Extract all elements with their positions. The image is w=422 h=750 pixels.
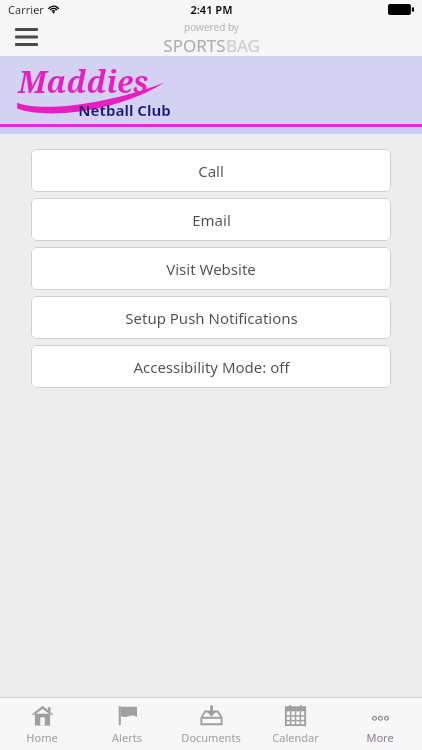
staticText: Home	[26, 730, 58, 745]
staticText: Carrier	[8, 2, 44, 17]
button[interactable]: Menu	[6, 18, 46, 56]
button[interactable]: Accessibility Mode: off	[31, 345, 391, 388]
button[interactable]: Calendar	[253, 698, 337, 750]
button[interactable]: Alerts	[85, 698, 169, 750]
staticText: Documents	[181, 730, 241, 745]
staticText: Call	[198, 161, 224, 181]
staticText: Setup Push Notifications	[125, 308, 298, 328]
staticText: Accessibility Mode: off	[133, 357, 290, 377]
staticText: Maddies	[18, 61, 149, 102]
button[interactable]: Visit Website	[31, 247, 391, 290]
staticText: 2:41 PM	[190, 2, 233, 17]
staticText: Netball Club	[78, 100, 171, 120]
staticText: SPORTS	[163, 34, 226, 57]
button[interactable]: Home	[0, 698, 84, 750]
staticText: Calendar	[272, 730, 319, 745]
staticText: Visit Website	[166, 259, 256, 279]
staticText: Alerts	[112, 730, 142, 745]
staticText: BAG	[226, 34, 260, 57]
button[interactable]: Call	[31, 149, 391, 192]
staticText: powered by	[184, 20, 239, 34]
button[interactable]: Email	[31, 198, 391, 241]
button[interactable]: Setup Push Notifications	[31, 296, 391, 339]
button[interactable]: More	[338, 698, 422, 750]
staticText: More	[366, 730, 394, 745]
button[interactable]: Documents	[169, 698, 253, 750]
staticText: Email	[192, 210, 231, 230]
